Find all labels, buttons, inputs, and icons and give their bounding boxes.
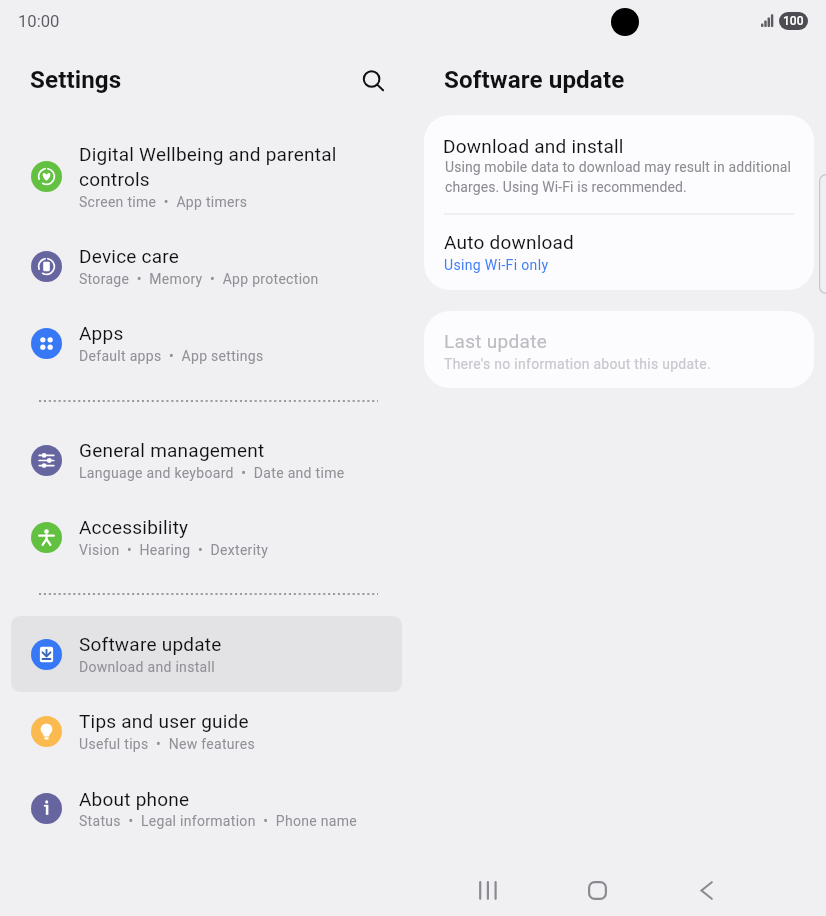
button[interactable]: Home bbox=[564, 864, 630, 916]
button[interactable] bbox=[11, 422, 402, 498]
button[interactable] bbox=[11, 228, 402, 304]
staticText: Auto download bbox=[444, 231, 784, 253]
staticText: Software update bbox=[444, 66, 764, 94]
staticText: 100 bbox=[783, 14, 804, 28]
button[interactable] bbox=[11, 500, 402, 576]
staticText: Useful tips • New features bbox=[79, 736, 419, 752]
button[interactable] bbox=[424, 311, 814, 388]
staticText: Download and install bbox=[443, 135, 783, 157]
staticText: Last update bbox=[444, 330, 784, 352]
button[interactable] bbox=[11, 139, 402, 215]
staticText: There's no information about this update… bbox=[444, 356, 784, 372]
staticText: Accessibility bbox=[79, 516, 419, 538]
staticText: Software update bbox=[79, 633, 419, 655]
staticText: Screen time • App timers bbox=[79, 194, 419, 210]
staticText: Digital Wellbeing and parental bbox=[79, 143, 419, 165]
staticText: Using mobile data to download may result… bbox=[445, 159, 815, 195]
staticText: Device care bbox=[79, 245, 419, 267]
button[interactable] bbox=[11, 306, 402, 382]
staticText: Storage • Memory • App protection bbox=[79, 271, 419, 287]
button[interactable] bbox=[424, 115, 814, 215]
button[interactable] bbox=[11, 694, 402, 770]
staticText: Settings bbox=[30, 66, 270, 94]
button[interactable]: Recent apps bbox=[455, 864, 521, 916]
button[interactable] bbox=[11, 771, 402, 847]
staticText: Language and keyboard • Date and time bbox=[79, 465, 419, 481]
staticText: Default apps • App settings bbox=[79, 348, 419, 364]
staticText: Status • Legal information • Phone name bbox=[79, 813, 419, 829]
staticText: Tips and user guide bbox=[79, 710, 419, 732]
staticText: Using Wi-Fi only bbox=[444, 257, 784, 273]
staticText: 10:00 bbox=[18, 12, 98, 31]
button[interactable]: Back bbox=[673, 864, 739, 916]
staticText: General management bbox=[79, 439, 419, 461]
staticText: Download and install bbox=[79, 659, 419, 675]
staticText: About phone bbox=[79, 788, 419, 810]
button[interactable] bbox=[11, 616, 402, 692]
button[interactable]: Search bbox=[355, 63, 387, 95]
staticText: Apps bbox=[79, 322, 419, 344]
staticText: Vision • Hearing • Dexterity bbox=[79, 542, 419, 558]
staticText: controls bbox=[79, 168, 419, 190]
button[interactable] bbox=[424, 216, 814, 290]
